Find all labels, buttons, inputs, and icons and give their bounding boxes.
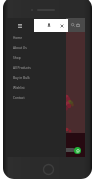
button[interactable]: Chat on WhatsApp [74, 147, 81, 154]
staticText: About Us [13, 46, 27, 50]
button[interactable]: Contact [6, 93, 66, 103]
button[interactable]: Shop [6, 53, 66, 63]
button[interactable]: Close [34, 19, 68, 32]
button[interactable]: Menu [15, 21, 24, 30]
staticText: Home [13, 36, 23, 40]
button[interactable]: About Us [6, 43, 66, 53]
staticText: Shop [13, 56, 21, 60]
button[interactable]: Cart [75, 22, 81, 28]
button[interactable]: Buy in Bulk [6, 73, 66, 83]
button[interactable]: Search [70, 22, 76, 28]
button[interactable]: All Products [6, 63, 66, 73]
button[interactable]: Home [6, 33, 66, 43]
button[interactable]: Wishlist [6, 83, 66, 93]
staticText: Buy in Bulk [13, 76, 30, 80]
staticText: All Products [13, 66, 31, 70]
staticText: Contact [13, 96, 25, 100]
staticText: Wishlist [13, 86, 25, 90]
other: Close [60, 24, 64, 28]
